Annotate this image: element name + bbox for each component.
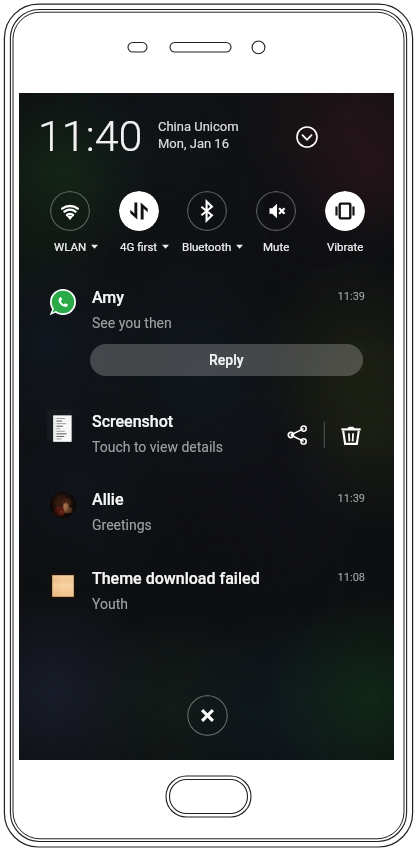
button[interactable]: Delete [329,413,373,457]
staticText: Touch to view details [92,439,223,455]
staticText: 11:39 [299,290,365,303]
button[interactable]: Share [275,413,319,457]
button[interactable]: Bluetooth [187,191,227,231]
staticText: Bluetooth [182,240,232,253]
staticText: 11:39 [299,492,365,505]
staticText: Greetings [92,517,152,533]
button[interactable]: Mute [256,191,296,231]
staticText: China Unicom [158,119,239,134]
staticText: 11:40 [38,111,143,161]
staticText: Theme download failed [92,569,260,588]
staticText: Mute [263,240,290,253]
button[interactable]: Vibrate [325,191,365,231]
button[interactable]: Screenshot [19,405,394,467]
staticText: 4G first [120,240,158,253]
button[interactable]: Theme download failed [19,562,394,624]
staticText: Amy [92,288,124,307]
button[interactable]: 4G first [119,191,159,231]
staticText: Mon, Jan 16 [158,136,229,151]
staticText: 11:08 [299,571,365,584]
staticText: Reply [209,352,244,368]
staticText: See you then [92,315,172,331]
staticText: Bluetooth [182,240,232,253]
staticText: WLAN [54,240,87,253]
staticText: Allie [92,490,124,509]
button[interactable]: Allie [19,483,394,545]
button[interactable]: Amy [19,281,394,343]
staticText: Vibrate [327,240,364,253]
staticText: 4G first [120,240,158,253]
staticText: Screenshot [92,412,174,431]
staticText: WLAN [54,240,87,253]
button[interactable]: Expand settings [294,124,320,150]
staticText: Youth [92,596,128,612]
button[interactable]: Close [187,695,228,736]
button[interactable]: Reply [90,344,363,376]
button[interactable]: WLAN [50,191,90,231]
